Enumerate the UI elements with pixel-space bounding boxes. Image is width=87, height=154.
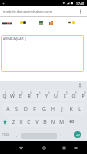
staticText: 17:41 bbox=[76, 1, 85, 6]
staticText: A bbox=[6, 105, 10, 112]
button[interactable]: Comma bbox=[12, 128, 21, 141]
button[interactable]: More options bbox=[76, 6, 85, 16]
button[interactable]: ARKADAŞLAR | bbox=[1, 35, 84, 72]
staticText: 2 bbox=[13, 91, 15, 95]
staticText: K bbox=[69, 105, 73, 112]
staticText: 1 bbox=[5, 91, 7, 95]
button[interactable]: V bbox=[33, 116, 41, 127]
button[interactable]: J bbox=[57, 103, 66, 114]
staticText: ?123 bbox=[2, 133, 9, 137]
button[interactable]: Q bbox=[0, 90, 8, 101]
button[interactable]: Y bbox=[42, 90, 51, 101]
staticText: N bbox=[51, 118, 55, 125]
button[interactable]: P bbox=[78, 90, 87, 101]
button[interactable]: K bbox=[66, 103, 75, 114]
staticText: F bbox=[33, 105, 36, 112]
button[interactable]: S bbox=[12, 103, 21, 114]
staticText: G bbox=[42, 105, 46, 112]
staticText: Q bbox=[2, 92, 7, 99]
button[interactable]: Enter bbox=[68, 128, 87, 141]
staticText: 7 bbox=[57, 91, 59, 95]
button[interactable]: N bbox=[49, 116, 57, 127]
button[interactable]: X bbox=[17, 116, 25, 127]
staticText: 9 bbox=[75, 91, 77, 95]
staticText: 5 bbox=[39, 91, 41, 95]
staticText: J bbox=[61, 105, 63, 112]
staticText: L bbox=[78, 105, 81, 112]
staticText: D bbox=[24, 105, 28, 112]
button[interactable]: ?123 bbox=[0, 128, 11, 141]
button[interactable]: M bbox=[57, 116, 65, 127]
staticText: 3 bbox=[21, 91, 23, 95]
button[interactable]: U bbox=[51, 90, 60, 101]
staticText: mobile.donanimhaber.com bbox=[3, 9, 53, 14]
button[interactable]: R bbox=[24, 90, 33, 101]
button[interactable]: H bbox=[48, 103, 57, 114]
button[interactable]: G bbox=[39, 103, 48, 114]
button[interactable]: Recent apps bbox=[57, 141, 70, 154]
button[interactable]: Switch keyboard bbox=[70, 141, 82, 154]
staticText: U bbox=[54, 92, 58, 99]
staticText: T bbox=[36, 92, 39, 99]
staticText: S bbox=[15, 105, 18, 112]
staticText: 8 bbox=[66, 91, 68, 95]
staticText: B bbox=[43, 118, 47, 125]
staticText: 4 bbox=[30, 91, 32, 95]
staticText: Z bbox=[12, 118, 15, 125]
staticText: , bbox=[16, 132, 18, 137]
staticText: H bbox=[51, 105, 55, 112]
staticText: E bbox=[19, 92, 22, 99]
button[interactable]: B bbox=[41, 116, 49, 127]
button[interactable]: Z bbox=[9, 116, 17, 127]
staticText: O bbox=[71, 92, 76, 99]
button[interactable]: L bbox=[75, 103, 84, 114]
staticText: Y bbox=[45, 92, 48, 99]
button[interactable]: Back bbox=[14, 141, 27, 154]
button[interactable]: O bbox=[69, 90, 78, 101]
button[interactable]: C bbox=[25, 116, 33, 127]
staticText: 0 bbox=[84, 91, 86, 95]
staticText: R bbox=[27, 92, 31, 99]
button[interactable]: I bbox=[60, 90, 69, 101]
button[interactable]: T bbox=[33, 90, 42, 101]
staticText: W bbox=[10, 92, 15, 99]
staticText: P bbox=[81, 92, 85, 99]
staticText: 6 bbox=[48, 91, 50, 95]
button[interactable]: Voice input bbox=[75, 81, 84, 89]
staticText: I bbox=[64, 92, 66, 99]
staticText: . bbox=[60, 132, 62, 137]
staticText: M bbox=[59, 118, 64, 125]
staticText: C bbox=[27, 118, 31, 125]
staticText: ARKADAŞLAR | bbox=[3, 36, 27, 40]
staticText: V bbox=[35, 118, 39, 125]
button[interactable]: A bbox=[3, 103, 12, 114]
button[interactable]: Home bbox=[37, 141, 50, 154]
button[interactable]: F bbox=[30, 103, 39, 114]
button[interactable]: W bbox=[8, 90, 16, 101]
button[interactable]: D bbox=[21, 103, 30, 114]
staticText: X bbox=[19, 118, 23, 125]
button[interactable]: E bbox=[16, 90, 24, 101]
button[interactable]: Backspace bbox=[65, 115, 77, 128]
button[interactable]: Shift bbox=[0, 115, 9, 128]
